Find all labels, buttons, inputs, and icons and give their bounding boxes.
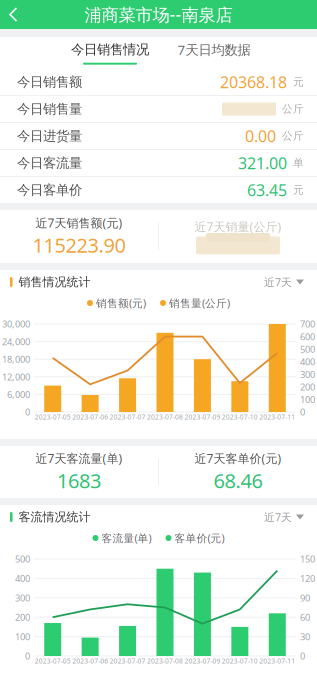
staticText: 今日客流量 bbox=[17, 155, 82, 171]
staticText: 200 bbox=[15, 611, 30, 623]
staticText: 销售量(公斤) bbox=[169, 296, 230, 310]
staticText: 120 bbox=[300, 572, 315, 585]
staticText: 近7天客流量(单) bbox=[35, 450, 122, 466]
staticText: 300 bbox=[300, 368, 315, 380]
staticText: 7天日均数据 bbox=[177, 41, 250, 58]
staticText: 2023-07-09 bbox=[184, 413, 220, 421]
staticText: 100 bbox=[15, 630, 30, 643]
staticText: 浦商菜市场--南泉店 bbox=[84, 3, 232, 26]
staticText: 20368.18 bbox=[220, 71, 287, 93]
staticText: 500 bbox=[15, 553, 30, 565]
staticText: 2023-07-10 bbox=[222, 657, 258, 665]
staticText: 今日销售额 bbox=[17, 74, 82, 90]
staticText: 0 bbox=[25, 650, 30, 662]
staticText: 0 bbox=[25, 406, 30, 418]
staticText: 0 bbox=[300, 650, 305, 662]
staticText: 今日客单价 bbox=[17, 182, 82, 198]
staticText: 400 bbox=[15, 572, 30, 585]
staticText: 0 bbox=[300, 406, 305, 418]
staticText: 2023-07-06 bbox=[72, 413, 108, 421]
staticText: 今日销售情况 bbox=[71, 41, 149, 58]
staticText: 12,000 bbox=[2, 371, 30, 383]
staticText: 321.00 bbox=[238, 152, 287, 174]
button[interactable]: Back bbox=[0, 6, 27, 23]
staticText: 客单价(元) bbox=[174, 531, 224, 545]
button[interactable]: 近7天 bbox=[264, 275, 304, 289]
staticText: 68.46 bbox=[213, 467, 262, 494]
staticText: 2023-07-11 bbox=[259, 413, 295, 421]
staticText: 2023-07-08 bbox=[147, 413, 183, 421]
button[interactable]: 近7天 bbox=[264, 510, 304, 524]
staticText: 2023-07-07 bbox=[110, 413, 146, 421]
staticText: 2023-07-11 bbox=[259, 657, 295, 665]
staticText: 近7天客单价(元) bbox=[194, 450, 281, 466]
staticText: 60 bbox=[300, 611, 310, 623]
staticText: 300 bbox=[15, 592, 30, 604]
staticText: 100 bbox=[300, 393, 315, 406]
staticText: 近7天销售额(元) bbox=[35, 215, 122, 231]
staticText: 2023-07-08 bbox=[147, 657, 183, 665]
staticText: 客流量(单) bbox=[101, 531, 151, 545]
staticText: 近7天销量(公斤) bbox=[194, 218, 281, 234]
staticText: 18,000 bbox=[2, 353, 30, 365]
staticText: 115223.90 bbox=[32, 232, 125, 258]
staticText: 600 bbox=[300, 330, 315, 343]
staticText: 63.45 bbox=[247, 179, 287, 201]
staticText: 700 bbox=[300, 318, 315, 330]
staticText: 2023-07-05 bbox=[35, 413, 71, 421]
button[interactable]: 7天日均数据 bbox=[162, 41, 266, 65]
staticText: 30 bbox=[300, 630, 310, 643]
staticText: 30,000 bbox=[2, 318, 30, 330]
staticText: 元 bbox=[293, 75, 304, 88]
staticText: 近7天 bbox=[264, 510, 292, 524]
staticText: 销售额(元) bbox=[96, 296, 146, 310]
staticText: 客流情况统计 bbox=[18, 510, 90, 524]
staticText: 近7天 bbox=[264, 275, 292, 289]
button[interactable]: 今日销售情况 bbox=[58, 41, 162, 65]
staticText: 2023-07-07 bbox=[110, 657, 146, 665]
staticText: 2023-07-09 bbox=[184, 657, 220, 665]
staticText: 2023-07-06 bbox=[72, 657, 108, 665]
staticText: 150 bbox=[300, 553, 315, 565]
staticText: 2023-07-05 bbox=[35, 657, 71, 665]
staticText: 销售情况统计 bbox=[18, 275, 90, 289]
staticText: 今日销售量 bbox=[17, 101, 82, 117]
staticText: 公斤 bbox=[282, 129, 304, 142]
staticText: 元 bbox=[293, 183, 304, 196]
staticText: 公斤 bbox=[282, 102, 304, 115]
staticText: 1683 bbox=[57, 467, 101, 494]
staticText: 2023-07-10 bbox=[222, 413, 258, 421]
staticText: 单 bbox=[293, 156, 304, 169]
staticText: 200 bbox=[300, 381, 315, 393]
staticText: 24,000 bbox=[2, 335, 30, 348]
staticText: 90 bbox=[300, 592, 310, 604]
staticText: 今日进货量 bbox=[17, 128, 82, 144]
staticText: 400 bbox=[300, 355, 315, 368]
staticText: 0.00 bbox=[245, 125, 276, 147]
staticText: 500 bbox=[300, 343, 315, 355]
staticText: 6,000 bbox=[7, 388, 30, 401]
